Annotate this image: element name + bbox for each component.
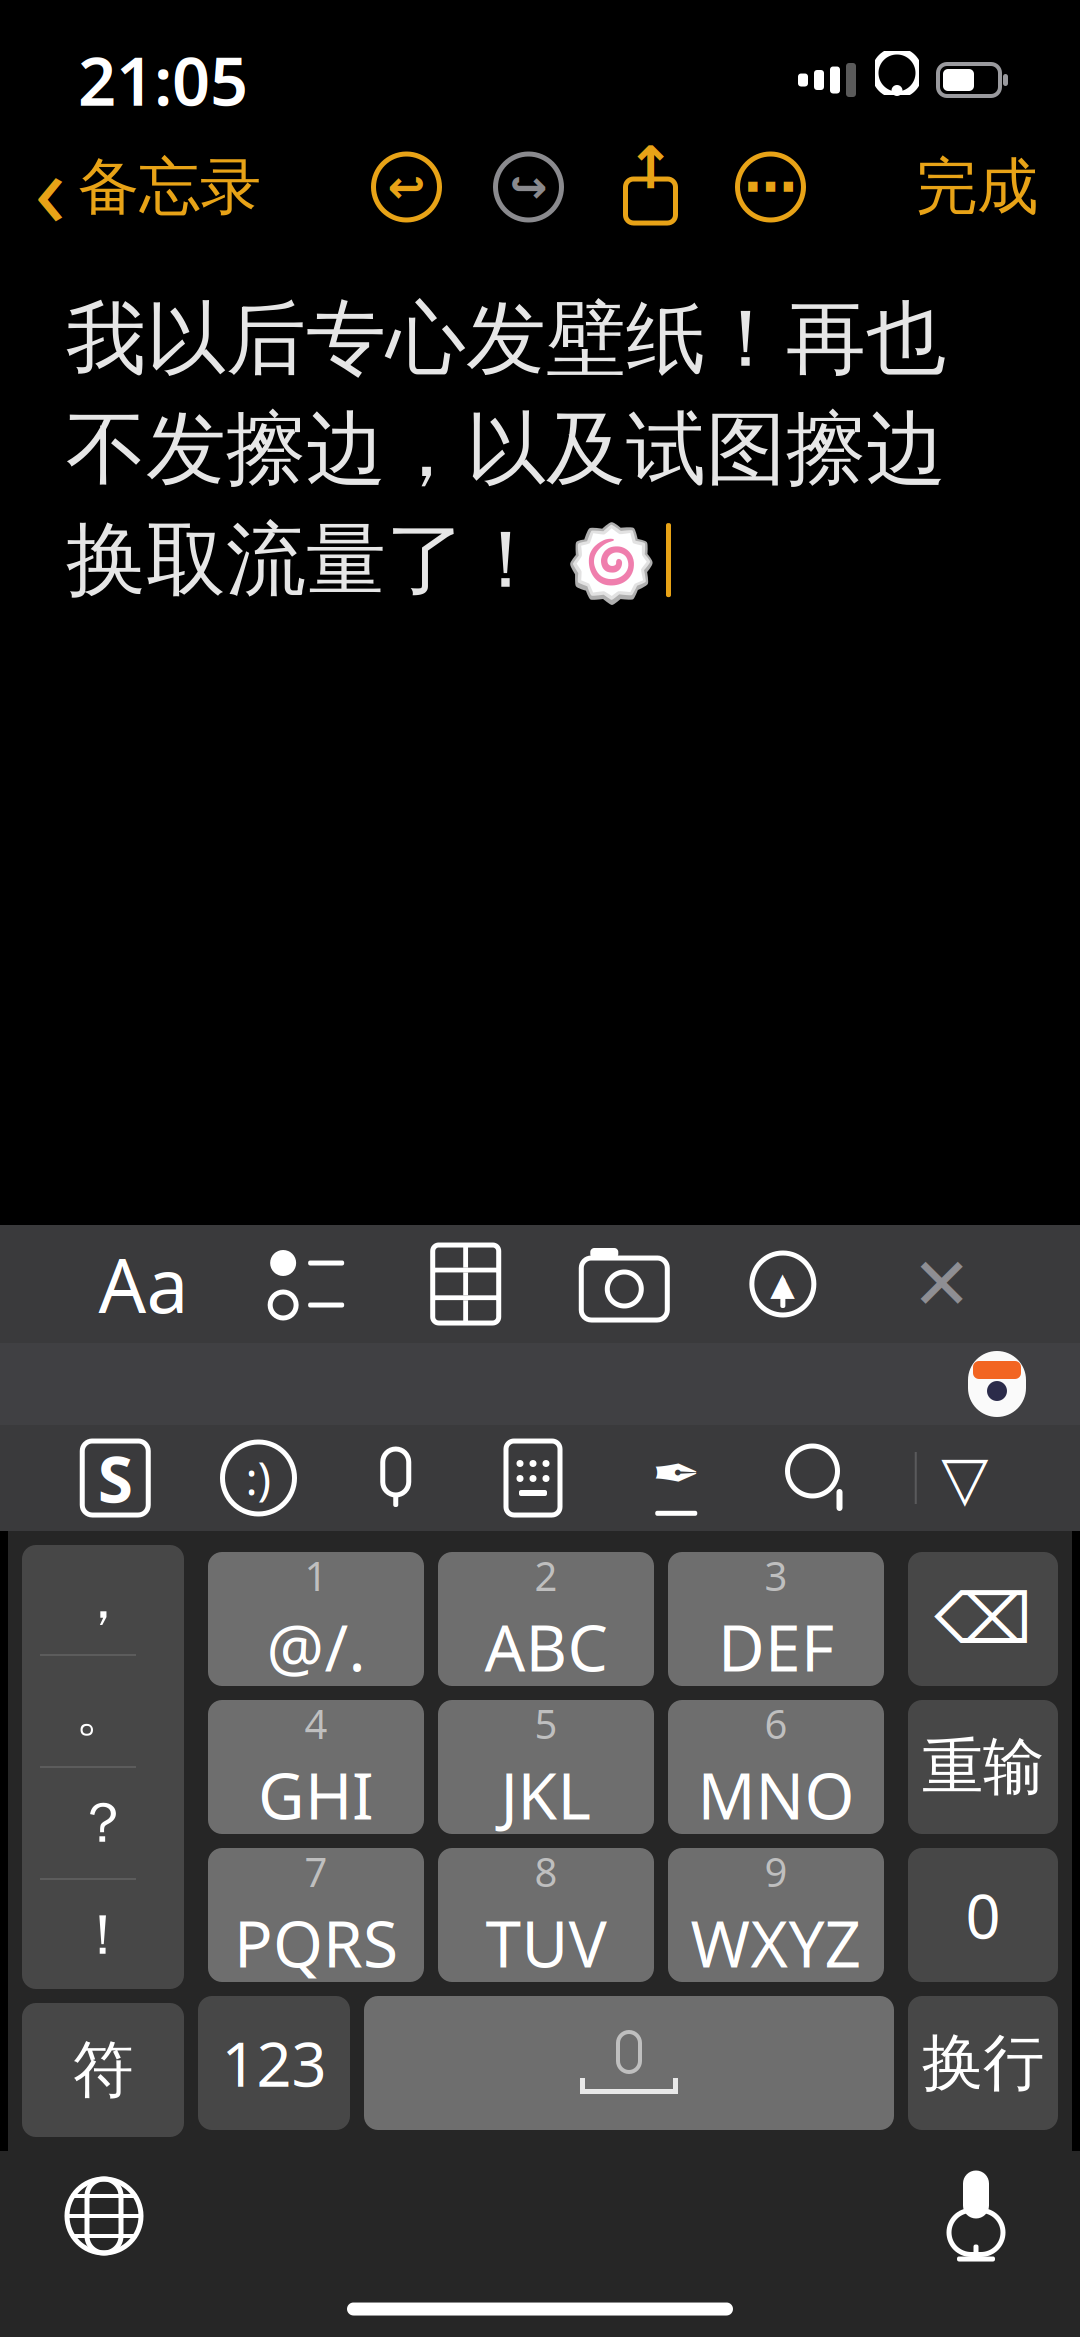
staticText: ↑ [626,135,675,201]
staticText: DEF [718,1604,834,1689]
staticText: 不发擦边，以及试图擦边 [66,400,946,499]
button[interactable]: Table [416,1234,516,1334]
staticText: ▽ [941,1443,988,1513]
button[interactable]: ‹ [28,106,267,268]
staticText: 8 [534,1845,557,1898]
button[interactable]: 2 [438,1552,654,1686]
button[interactable]: 123 [198,1996,350,2130]
staticText: MNO [697,1752,854,1837]
staticText: ！ [75,1901,131,1969]
button[interactable]: More [737,154,803,220]
staticText: ABC [484,1604,607,1689]
button[interactable]: Sogou account [962,1345,1032,1423]
button[interactable]: 重输 [908,1700,1058,1834]
button[interactable]: 4 [208,1700,424,1834]
button[interactable]: Undo [373,154,439,220]
staticText: ✕ [911,1243,971,1325]
button[interactable]: 0 [908,1848,1058,1982]
button[interactable]: 1 [208,1552,424,1686]
button[interactable]: Dictation [930,2166,1022,2266]
button[interactable]: Redo [495,154,561,220]
button[interactable]: Delete [908,1552,1058,1686]
staticText: 4 [304,1697,327,1750]
button[interactable]: Emoji [210,1430,306,1526]
staticText: 5 [534,1697,557,1750]
button[interactable]: 换行 [908,1996,1058,2130]
staticText: 3 [764,1549,787,1602]
staticText: 完成 [916,149,1038,225]
staticText: 我以后专心发壁纸！再也 [66,290,946,388]
staticText: :) [245,1448,271,1508]
button[interactable]: Sogou [67,1430,163,1526]
button[interactable]: Search [771,1430,867,1526]
staticText: S [98,1435,133,1520]
button[interactable]: Format [89,1234,199,1334]
staticText: 换行 [922,2025,1044,2101]
button[interactable]: Markup [733,1234,833,1334]
staticText: Aa [99,1234,189,1334]
staticText: ‹ [34,118,66,256]
staticText: GHI [258,1752,374,1837]
button[interactable]: Hide toolbar [917,1430,1013,1526]
button[interactable]: Punctuation [22,1545,184,1989]
staticText: 1 [304,1549,327,1602]
staticText: 7 [304,1845,327,1898]
button[interactable]: Switch keyboard [58,2170,150,2262]
staticText: ⌫ [934,1580,1032,1658]
button[interactable]: Camera [574,1234,674,1334]
button[interactable]: 7 [208,1848,424,1982]
button[interactable]: 8 [438,1848,654,1982]
button[interactable]: 完成 [910,137,1044,237]
button[interactable]: Space [364,1996,894,2130]
staticText: ？ [75,1789,131,1857]
staticText: ↩ [387,161,425,213]
staticText: JKL [500,1752,591,1837]
staticText: TUV [485,1900,606,1985]
button[interactable]: 6 [668,1700,884,1834]
staticText: 重输 [922,1729,1044,1805]
staticText: 21:05 [78,36,248,124]
staticText: 符 [72,2032,133,2108]
button[interactable]: 符 [22,2003,184,2137]
button[interactable]: Share [617,148,683,226]
staticText: PQRS [234,1900,398,1985]
staticText: 0 [965,1874,1000,1956]
staticText: 备忘录 [78,149,261,225]
staticText: ， [75,1565,131,1633]
staticText: 🍥 [546,510,658,610]
staticText: ▲ [770,1266,795,1302]
button[interactable]: Voice input [354,1430,438,1526]
button[interactable]: 9 [668,1848,884,1982]
button[interactable]: Checklist [257,1234,357,1334]
button[interactable]: Close keyboard [891,1234,991,1334]
button[interactable]: 5 [438,1700,654,1834]
staticText: ⋯ [744,157,797,217]
button[interactable]: Handwriting [628,1430,724,1526]
button[interactable]: Keyboard layout [485,1430,581,1526]
staticText: ↪ [509,161,547,213]
staticText: @/. [266,1604,365,1689]
button[interactable]: 3 [668,1552,884,1686]
staticText: 2 [534,1549,557,1602]
staticText: 。 [75,1677,131,1745]
staticText: 9 [764,1845,787,1898]
staticText: ✒ [652,1440,701,1507]
staticText: 换取流量了！ [66,511,546,609]
staticText: 6 [764,1697,787,1750]
staticText: 123 [221,2022,326,2104]
staticText: WXYZ [690,1900,861,1985]
